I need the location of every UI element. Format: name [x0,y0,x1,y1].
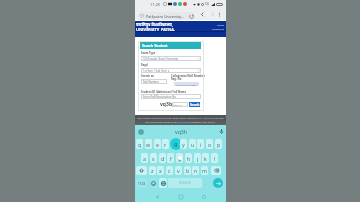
staticText: j [197,155,199,162]
button[interactable]: o [206,139,213,149]
staticText: q [138,141,142,148]
staticText: y [182,141,185,148]
staticText: k [204,155,207,162]
staticText: Contact us [212,27,224,30]
button[interactable]: Voice input [218,128,225,135]
button[interactable]: g [176,153,183,163]
staticText: w [146,141,151,148]
staticText: p [217,141,221,148]
staticText: 9709090909 [180,121,192,124]
staticText: 1st Sem / 2nd Sem ▾ [143,69,170,73]
staticText: Enter Roll/Registration No [143,95,176,99]
button[interactable]: 1st Sem / 2nd Sem ▾ [141,68,201,73]
button[interactable]: d [159,153,166,163]
staticText: o [208,141,212,148]
staticText: Search Student [142,43,168,48]
button[interactable]: j [194,153,201,163]
button[interactable]: q [136,139,143,149]
button[interactable]: More options [215,10,223,18]
button[interactable]: s [150,153,157,163]
button[interactable]: g [170,138,182,150]
staticText: l [214,155,216,162]
button[interactable]: f [167,153,174,163]
button[interactable]: Search [189,102,200,107]
staticText: ENGLISH [179,181,191,185]
staticText: Student ID (Admission) Full Name [141,90,186,94]
button[interactable]: b [184,166,191,175]
staticText: UG Regular (Even) Semester [143,57,179,61]
staticText: Patliputra University... [146,14,185,19]
button[interactable]: Back [152,192,162,202]
staticText: 5G [205,2,210,6]
button[interactable]: Back [198,10,206,18]
button[interactable]: Enter Roll/Registration No [141,94,201,99]
staticText: d [161,155,165,162]
button[interactable]: ?123 [136,178,148,188]
staticText: n [194,167,198,174]
button[interactable]: Change language [159,178,167,188]
staticText: between 10AM to 5PM. [192,121,216,124]
button[interactable]: Shift [136,166,147,175]
staticText: m [202,167,207,174]
staticText: s [152,155,155,162]
button[interactable]: Emoji [150,178,157,188]
button[interactable]: i [197,139,204,149]
button[interactable]: k [202,153,209,163]
button[interactable]: n [192,166,199,175]
staticText: vq3h [175,128,187,135]
button[interactable]: captcha [172,102,188,107]
button[interactable]: Recent apps [199,192,209,202]
button[interactable]: Home [176,192,186,202]
staticText: g [174,140,178,148]
button[interactable]: y [180,139,187,149]
button[interactable]: Space [168,178,202,188]
staticText: Note: Students are advised to check deta… [137,117,203,120]
staticText: Home [217,23,224,26]
staticText: i [200,141,202,148]
button[interactable]: l [211,153,218,163]
button[interactable]: Roll Number [141,79,167,84]
button[interactable]: p [215,139,222,149]
staticText: Exam Type [141,51,156,55]
button[interactable]: m [201,166,208,175]
button[interactable]: e [154,139,161,149]
button[interactable]: x [157,166,164,175]
staticText: Regd [141,63,148,67]
button[interactable]: u [189,139,196,149]
staticText: Search [190,103,200,107]
button[interactable]: Search Student [140,41,201,49]
button[interactable]: c [166,166,173,175]
button[interactable]: Patliputra University... [138,12,195,20]
staticText: captcha [173,103,182,106]
staticText: f [170,155,172,162]
staticText: z [151,167,154,174]
button[interactable]: v [175,166,182,175]
button[interactable]: UG Regular (Even) Semester [141,56,201,61]
staticText: c [168,167,171,174]
button[interactable]: Forward [208,10,216,18]
staticText: u [191,141,195,148]
staticText: List of PG Colleges [176,83,197,86]
button[interactable]: List of PG Colleges [174,82,199,86]
button[interactable]: Clipboard [137,128,144,135]
staticText: 11:25 [150,2,161,7]
button[interactable]: Backspace [211,166,221,175]
staticText: Reg. No. [171,77,183,81]
button[interactable]: r [162,139,169,149]
button[interactable]: w [145,139,152,149]
button[interactable]: h [185,153,192,163]
staticText: . [205,181,207,186]
staticText: a [143,155,146,162]
button[interactable]: a [141,153,148,163]
button[interactable]: Enter [213,178,223,188]
staticText: Roll Number [143,80,159,84]
staticText: e [156,141,159,148]
staticText: UNIVERSITY, PATNA. [136,27,175,31]
staticText: Search on [141,74,155,78]
button[interactable]: z [149,166,156,175]
staticText: Collegewise/Roll Number [171,74,205,78]
staticText: r [164,141,167,148]
staticText: x [159,167,162,174]
staticText: Download [203,117,213,120]
